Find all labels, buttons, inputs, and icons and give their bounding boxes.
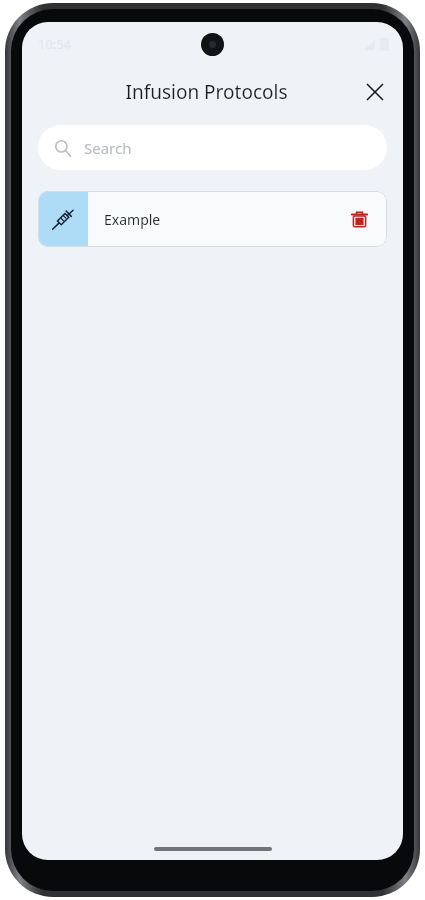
button[interactable]: Search: [38, 125, 387, 170]
staticText: Infusion Protocols: [125, 79, 288, 105]
button[interactable]: Example: [38, 191, 387, 247]
staticText: Search: [84, 138, 132, 158]
staticText: 10:54: [38, 35, 72, 53]
button[interactable]: Close: [355, 72, 395, 112]
staticText: Example: [104, 210, 161, 229]
button[interactable]: Delete: [341, 201, 377, 237]
